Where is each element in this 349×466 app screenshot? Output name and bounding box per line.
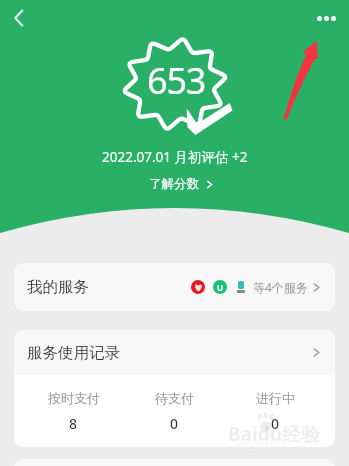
- staticText: 了解分数: [149, 176, 199, 192]
- staticText: jingyan.baidu.com: [239, 438, 313, 450]
- button[interactable]: 进行中: [225, 390, 326, 433]
- staticText: 进行中: [256, 390, 295, 406]
- button[interactable]: More options: [303, 1, 349, 35]
- staticText: 待支付: [155, 390, 194, 406]
- staticText: 等4个服务: [253, 279, 308, 295]
- staticText: 2022.07.01 月初评估 +2: [102, 148, 248, 166]
- button[interactable]: 按时支付: [23, 390, 124, 433]
- staticText: U: [217, 282, 224, 293]
- staticText: 按时支付: [48, 390, 100, 406]
- button[interactable]: 服务使用记录: [14, 330, 335, 375]
- staticText: 0: [170, 414, 179, 433]
- staticText: 服务使用记录: [27, 343, 120, 363]
- staticText: 8: [69, 414, 78, 433]
- staticText: 我的服务: [27, 277, 89, 297]
- staticText: 0: [271, 414, 280, 433]
- button[interactable]: 待支付: [124, 390, 225, 433]
- staticText: 653: [147, 56, 206, 105]
- button[interactable]: 了解分数: [149, 176, 214, 192]
- staticText: Baidu经验: [228, 421, 321, 447]
- button[interactable]: Back: [1, 0, 37, 36]
- button[interactable]: 我的服务: [14, 263, 335, 311]
